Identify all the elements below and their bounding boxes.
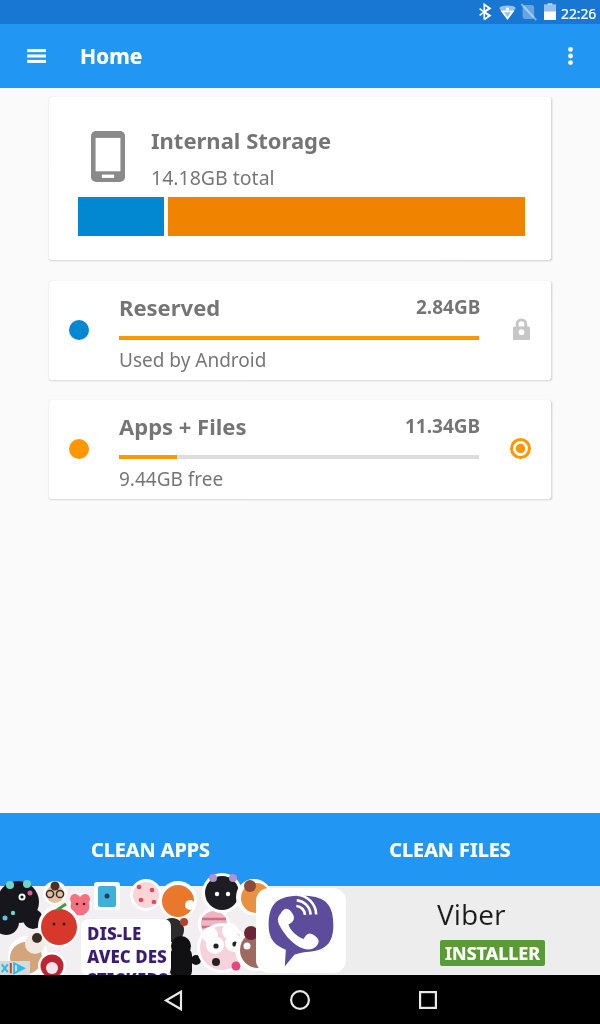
staticText: Reserved — [119, 292, 221, 322]
staticText: INSTALLER — [445, 941, 541, 966]
button[interactable]: INSTALLER — [440, 940, 545, 966]
button[interactable]: Apps + Files — [49, 400, 551, 499]
staticText: AVEC DES — [87, 945, 167, 968]
button[interactable]: Open navigation drawer — [16, 24, 56, 88]
button[interactable]: Recent apps — [404, 976, 452, 1024]
staticText: STICKERS — [87, 968, 168, 991]
staticText: 14.18GB total — [151, 164, 275, 191]
button[interactable]: CLEAN FILES — [300, 813, 600, 886]
button[interactable]: Home — [276, 976, 324, 1024]
button[interactable]: Reserved — [49, 281, 551, 380]
staticText: 11.34GB — [405, 413, 481, 439]
button[interactable]: Locked — [510, 316, 532, 342]
staticText: 2.84GB — [416, 294, 481, 320]
staticText: CLEAN APPS — [91, 836, 210, 863]
staticText: Home — [80, 42, 143, 71]
staticText: Internal Storage — [151, 125, 332, 155]
staticText: 9.44GB free — [119, 466, 224, 492]
staticText: Used by Android — [119, 347, 267, 373]
staticText: CLEAN FILES — [389, 836, 511, 863]
staticText: 22:26 — [561, 4, 597, 23]
staticText: DIS-LE — [87, 922, 142, 945]
staticText: Viber — [437, 895, 506, 933]
staticText: Apps + Files — [119, 411, 247, 441]
button[interactable]: DIS-LE — [0, 886, 600, 975]
button[interactable]: CLEAN APPS — [0, 813, 300, 886]
button[interactable]: Ad choices — [0, 961, 30, 975]
button[interactable]: Back — [149, 976, 197, 1024]
button[interactable]: Select — [509, 435, 531, 461]
button[interactable]: More options — [545, 24, 595, 88]
button[interactable]: Internal Storage — [49, 97, 551, 260]
